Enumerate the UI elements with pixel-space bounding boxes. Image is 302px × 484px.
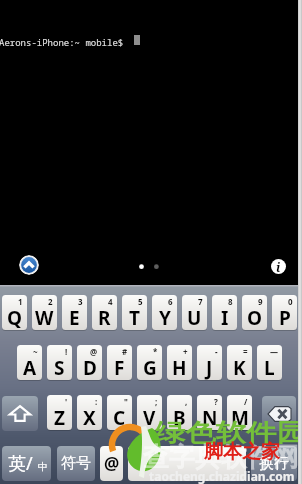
button[interactable]: Backspace: [262, 396, 296, 431]
staticText: 8: [228, 296, 233, 307]
staticText: R: [98, 305, 111, 330]
staticText: taocheng.chazidian.com: [149, 468, 295, 484]
staticText: 符号: [61, 454, 91, 473]
button[interactable]: !: [47, 345, 72, 380]
button[interactable]: =: [227, 345, 252, 380]
staticText: 6: [168, 296, 173, 307]
staticText: L: [264, 355, 275, 380]
staticText: ,: [185, 396, 188, 407]
button[interactable]: ": [107, 395, 132, 430]
staticText: 2: [48, 296, 53, 307]
button[interactable]: 1: [2, 295, 27, 330]
button[interactable]: 5: [122, 295, 147, 330]
button[interactable]: ,: [167, 395, 192, 430]
staticText: ?: [214, 396, 218, 407]
button[interactable]: Symbols: [57, 446, 95, 481]
button[interactable]: Scroll up: [19, 255, 39, 275]
button[interactable]: 7: [182, 295, 207, 330]
button[interactable]: At sign: [100, 446, 123, 481]
staticText: E: [69, 305, 80, 330]
staticText: —: [270, 346, 278, 357]
staticText: ;: [155, 396, 158, 407]
staticText: :: [95, 396, 98, 407]
staticText: A: [23, 355, 37, 380]
staticText: X: [83, 405, 96, 430]
staticText: ": [124, 396, 128, 407]
button[interactable]: Return: [251, 446, 297, 481]
staticText: H: [172, 355, 187, 380]
button[interactable]: 9: [242, 295, 267, 330]
staticText: 英/: [8, 451, 33, 476]
staticText: B: [173, 405, 186, 430]
staticText: 查字典软件网: [143, 441, 299, 474]
staticText: I: [221, 305, 229, 330]
staticText: F: [114, 355, 125, 380]
staticText: ': [65, 396, 68, 407]
button[interactable]: -: [197, 345, 222, 380]
staticText: J: [206, 355, 213, 380]
staticText: N: [202, 405, 218, 430]
staticText: 换行: [259, 454, 289, 473]
staticText: @: [104, 452, 120, 475]
staticText: 5: [138, 296, 143, 307]
button[interactable]: 0: [272, 295, 297, 330]
staticText: 脚本之家: [204, 440, 280, 464]
staticText: Z: [54, 405, 66, 430]
staticText: O: [247, 305, 263, 330]
staticText: 4: [108, 296, 113, 307]
staticText: Q: [7, 305, 23, 330]
button[interactable]: *: [137, 345, 162, 380]
button[interactable]: /: [227, 395, 252, 430]
button[interactable]: +: [167, 345, 192, 380]
staticText: -: [215, 346, 218, 357]
button[interactable]: Space: [128, 446, 246, 481]
button[interactable]: 8: [212, 295, 237, 330]
staticText: G: [143, 355, 157, 380]
staticText: 绿色软件园: [155, 418, 302, 448]
staticText: K: [233, 355, 246, 380]
button[interactable]: ': [47, 395, 72, 430]
staticText: =: [243, 346, 248, 357]
staticText: !: [65, 346, 68, 357]
staticText: *: [153, 346, 158, 357]
staticText: 9: [258, 296, 263, 307]
staticText: M: [231, 405, 249, 430]
button[interactable]: ;: [137, 395, 162, 430]
button[interactable]: —: [257, 345, 282, 380]
staticText: W: [35, 305, 54, 330]
button[interactable]: ?: [197, 395, 222, 430]
staticText: V: [143, 405, 156, 430]
staticText: 中: [38, 460, 48, 473]
staticText: 1: [18, 296, 23, 307]
button[interactable]: :: [77, 395, 102, 430]
staticText: C: [113, 405, 126, 430]
staticText: 0: [288, 296, 293, 307]
staticText: 7: [198, 296, 203, 307]
button[interactable]: 6: [152, 295, 177, 330]
button[interactable]: ~: [17, 345, 42, 380]
staticText: Y: [159, 305, 171, 330]
staticText: /: [244, 396, 248, 407]
staticText: S: [54, 355, 65, 380]
button[interactable]: Shift: [2, 396, 38, 431]
staticText: T: [129, 305, 140, 330]
button[interactable]: 3: [62, 295, 87, 330]
button[interactable]: Info: [271, 259, 286, 274]
button[interactable]: #: [107, 345, 132, 380]
staticText: 3: [78, 296, 83, 307]
staticText: D: [83, 355, 97, 380]
staticText: @: [90, 346, 98, 357]
staticText: ~: [33, 346, 38, 357]
staticText: U: [187, 305, 202, 330]
button[interactable]: English Chinese: [2, 446, 51, 481]
button[interactable]: @: [77, 345, 102, 380]
button[interactable]: 4: [92, 295, 117, 330]
staticText: Aerons-iPhone:~ mobile$: [0, 36, 124, 48]
staticText: #: [122, 346, 128, 357]
button[interactable]: 2: [32, 295, 57, 330]
staticText: P: [279, 305, 291, 330]
staticText: i: [276, 259, 281, 274]
staticText: +: [183, 346, 188, 357]
